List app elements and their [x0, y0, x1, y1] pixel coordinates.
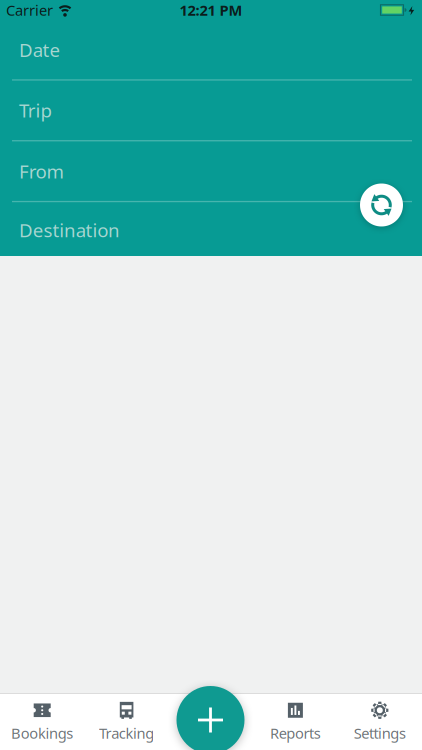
staticText: Bookings: [11, 723, 73, 743]
button[interactable]: Reports: [253, 693, 338, 750]
button[interactable]: Settings: [338, 693, 422, 750]
button[interactable]: Trip: [0, 81, 422, 140]
staticText: Destination: [19, 218, 120, 242]
button[interactable]: Swap origin and destination: [360, 183, 403, 226]
button[interactable]: Date: [0, 20, 422, 79]
staticText: Reports: [270, 723, 321, 743]
button[interactable]: Bookings: [0, 693, 84, 750]
staticText: From: [19, 159, 63, 184]
button[interactable]: Add booking: [176, 686, 244, 750]
staticText: Carrier: [6, 0, 53, 20]
staticText: Date: [19, 37, 60, 62]
staticText: Trip: [19, 98, 51, 123]
button[interactable]: Destination: [0, 202, 422, 256]
button[interactable]: From: [0, 141, 422, 201]
staticText: Settings: [354, 723, 406, 743]
button[interactable]: Tracking: [84, 693, 169, 750]
staticText: 12:21 PM: [179, 0, 242, 20]
staticText: Tracking: [99, 723, 154, 743]
